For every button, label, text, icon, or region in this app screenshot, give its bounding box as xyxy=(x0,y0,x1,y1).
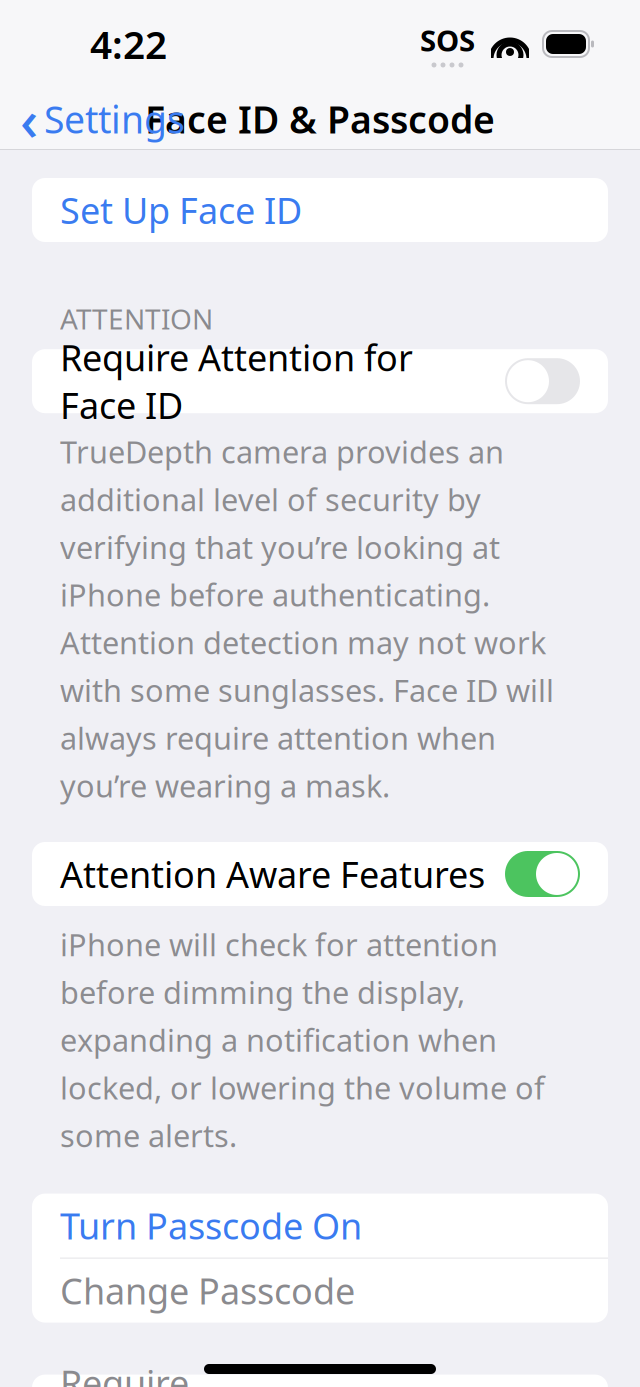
button[interactable]: Turn Passcode On xyxy=(32,1194,608,1258)
staticText: Change Passcode xyxy=(60,1267,355,1314)
staticText: 4:22 xyxy=(90,18,167,70)
staticText: SOS xyxy=(420,20,475,59)
staticText: iPhone will check for attention before d… xyxy=(60,924,545,1156)
staticText: Require Passcode xyxy=(60,1359,217,1387)
staticText: Turn Passcode On xyxy=(60,1202,362,1249)
button[interactable]: Attention Aware Features xyxy=(32,842,608,906)
staticText: Attention Aware Features xyxy=(60,850,485,898)
staticText: TrueDepth camera provides an additional … xyxy=(60,431,554,806)
button[interactable]: Require Attention for Face ID xyxy=(32,349,608,413)
staticText: ‹ xyxy=(20,82,38,156)
staticText: Set Up Face ID xyxy=(60,186,302,234)
staticText: Settings xyxy=(44,94,185,144)
button[interactable]: Set Up Face ID xyxy=(32,178,608,242)
button[interactable]: Require Passcode xyxy=(32,1375,608,1387)
staticText: ATTENTION xyxy=(60,300,213,337)
button[interactable]: Change Passcode xyxy=(32,1259,608,1323)
button[interactable]: ‹ xyxy=(0,74,185,164)
staticText: Require Attention for Face ID xyxy=(60,333,413,429)
staticText: Face ID & Passcode xyxy=(145,94,495,144)
